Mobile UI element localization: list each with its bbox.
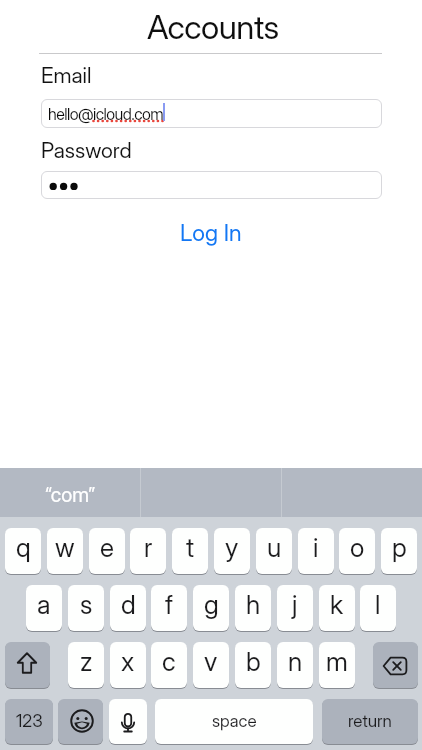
- button[interactable]: g: [193, 585, 229, 631]
- staticText: b: [246, 646, 261, 677]
- staticText: 123: [16, 710, 43, 731]
- staticText: z: [80, 646, 93, 677]
- staticText: space: [212, 711, 257, 732]
- staticText: k: [330, 589, 344, 620]
- button[interactable]: [373, 642, 418, 688]
- staticText: y: [225, 532, 239, 563]
- button[interactable]: w: [47, 528, 83, 574]
- button[interactable]: x: [110, 642, 146, 688]
- button[interactable]: [41, 171, 382, 199]
- staticText: s: [80, 589, 93, 620]
- button[interactable]: b: [235, 642, 271, 688]
- button[interactable]: 123: [5, 699, 53, 744]
- staticText: Log In: [180, 219, 242, 247]
- button[interactable]: h: [235, 585, 271, 631]
- button[interactable]: o: [339, 528, 375, 574]
- staticText: v: [204, 646, 218, 677]
- staticText: m: [326, 646, 348, 677]
- staticText: f: [165, 589, 173, 620]
- button[interactable]: i: [298, 528, 334, 574]
- staticText: n: [288, 646, 303, 677]
- button[interactable]: [5, 642, 50, 688]
- button[interactable]: r: [130, 528, 166, 574]
- button[interactable]: p: [381, 528, 417, 574]
- button[interactable]: s: [68, 585, 104, 631]
- staticText: w: [55, 532, 75, 563]
- button[interactable]: v: [193, 642, 229, 688]
- staticText: g: [204, 589, 219, 620]
- staticText: return: [348, 711, 392, 732]
- staticText: q: [16, 532, 31, 563]
- staticText: Email: [41, 62, 92, 88]
- button[interactable]: Log In: [180, 219, 242, 247]
- staticText: “com”: [45, 483, 96, 507]
- staticText: t: [186, 532, 195, 563]
- staticText: a: [37, 589, 51, 620]
- button[interactable]: [41, 99, 382, 128]
- button[interactable]: k: [319, 585, 355, 631]
- staticText: p: [392, 532, 407, 563]
- staticText: d: [121, 589, 136, 620]
- staticText: i: [313, 532, 319, 563]
- button[interactable]: return: [322, 699, 418, 744]
- button[interactable]: “com”: [0, 468, 140, 517]
- button[interactable]: n: [277, 642, 313, 688]
- button[interactable]: c: [151, 642, 187, 688]
- staticText: u: [267, 532, 282, 563]
- button[interactable]: z: [68, 642, 104, 688]
- staticText: o: [350, 532, 365, 563]
- staticText: x: [121, 646, 135, 677]
- button[interactable]: a: [26, 585, 62, 631]
- button[interactable]: e: [89, 528, 125, 574]
- button[interactable]: j: [277, 585, 313, 631]
- button[interactable]: q: [5, 528, 41, 574]
- staticText: Password: [41, 137, 132, 163]
- button[interactable]: l: [360, 585, 396, 631]
- staticText: Accounts: [147, 7, 279, 47]
- button[interactable]: m: [319, 642, 355, 688]
- button[interactable]: u: [256, 528, 292, 574]
- staticText: e: [100, 532, 114, 563]
- button[interactable]: t: [172, 528, 208, 574]
- staticText: hello@icloud.com: [48, 104, 164, 123]
- staticText: j: [292, 589, 298, 620]
- button[interactable]: f: [151, 585, 187, 631]
- button[interactable]: [109, 699, 147, 744]
- button[interactable]: space: [155, 699, 313, 744]
- staticText: c: [162, 646, 176, 677]
- staticText: r: [144, 532, 153, 563]
- button[interactable]: y: [214, 528, 250, 574]
- staticText: h: [246, 589, 261, 620]
- staticText: l: [375, 589, 381, 620]
- button[interactable]: d: [110, 585, 146, 631]
- button[interactable]: [58, 699, 103, 744]
